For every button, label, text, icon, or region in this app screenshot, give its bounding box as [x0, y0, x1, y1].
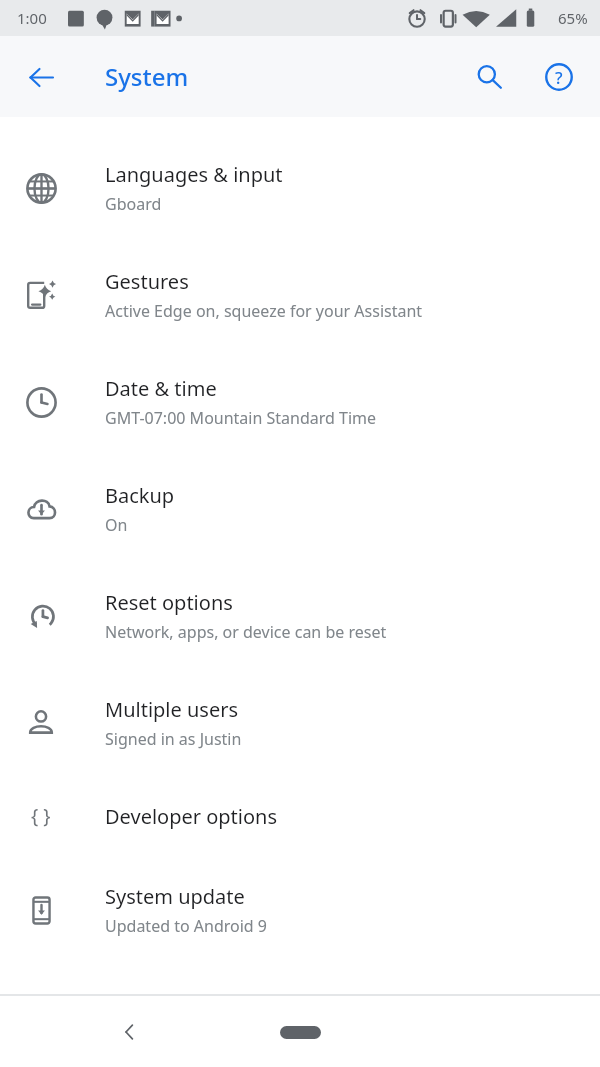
button[interactable]: Multiple users: [0, 669, 600, 776]
staticText: Signed in as Justin: [105, 728, 242, 750]
staticText: System: [105, 60, 189, 93]
staticText: Gboard: [105, 193, 162, 215]
button[interactable]: Backup: [0, 455, 600, 562]
staticText: Network, apps, or device can be reset: [105, 621, 387, 643]
staticText: Gestures: [105, 268, 189, 295]
button[interactable]: Reset options: [0, 562, 600, 669]
staticText: GMT-07:00 Mountain Standard Time: [105, 407, 377, 429]
staticText: Updated to Android 9: [105, 915, 267, 937]
staticText: ?: [555, 66, 563, 89]
staticText: 65%: [558, 8, 588, 28]
button[interactable]: Date & time: [0, 348, 600, 455]
button[interactable]: System update: [0, 856, 600, 963]
button[interactable]: Gestures: [0, 241, 600, 348]
staticText: On: [105, 514, 128, 536]
staticText: Developer options: [105, 803, 278, 830]
staticText: 1:00: [17, 8, 47, 28]
staticText: Backup: [105, 482, 175, 509]
button[interactable]: { }: [0, 776, 600, 856]
staticText: Languages & input: [105, 161, 283, 188]
button[interactable]: Help: [535, 53, 583, 101]
staticText: Active Edge on, squeeze for your Assista…: [105, 300, 423, 322]
staticText: System update: [105, 883, 245, 910]
button[interactable]: Home: [268, 1015, 332, 1049]
staticText: Multiple users: [105, 696, 239, 723]
staticText: Date & time: [105, 375, 217, 402]
staticText: Reset options: [105, 589, 233, 616]
button[interactable]: Search: [465, 53, 513, 101]
button[interactable]: Back: [106, 1008, 154, 1056]
button[interactable]: Languages & input: [0, 134, 600, 241]
button[interactable]: Back: [17, 53, 65, 101]
staticText: { }: [31, 803, 51, 829]
